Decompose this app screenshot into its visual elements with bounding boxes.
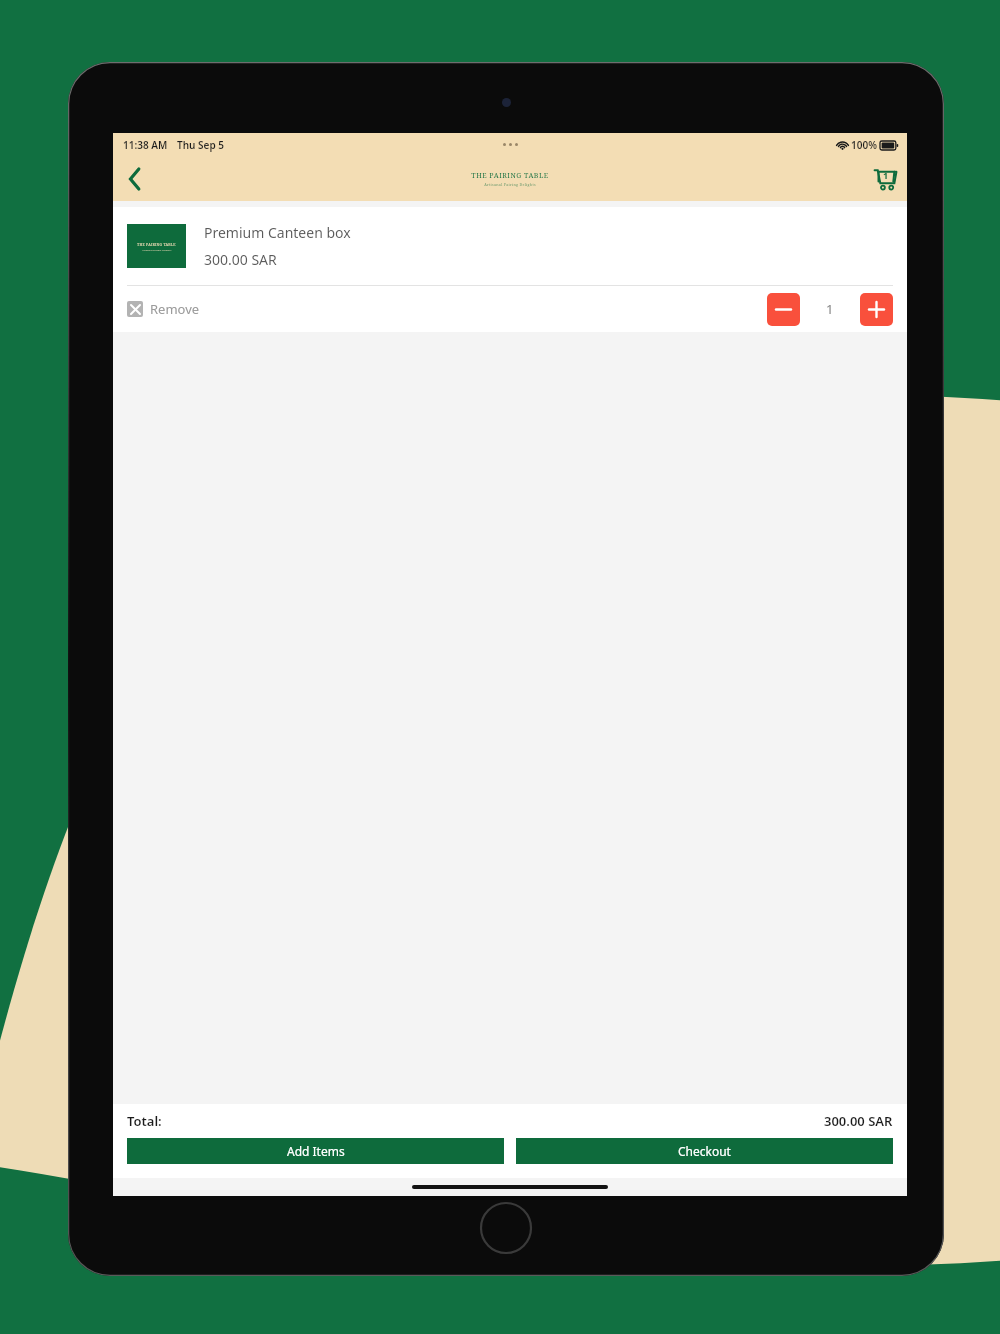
staticText: Artisanal Pairing Delights: [142, 248, 172, 251]
staticText: 300.00 SAR: [824, 1112, 893, 1130]
staticText: 300.00 SAR: [204, 250, 277, 269]
staticText: THE PAIRING TABLE: [471, 171, 549, 181]
staticText: 1: [883, 169, 889, 181]
staticText: Premium Canteen box: [204, 223, 351, 242]
button[interactable]: Decrease quantity: [767, 293, 800, 326]
button[interactable]: Cart: [863, 157, 907, 201]
staticText: 1: [826, 300, 834, 318]
staticText: Total:: [127, 1112, 162, 1130]
button[interactable]: Remove: [127, 300, 200, 318]
staticText: Remove: [150, 300, 200, 318]
staticText: 100%: [851, 138, 877, 152]
button[interactable]: Back: [113, 157, 157, 201]
staticText: Thu Sep 5: [177, 138, 224, 152]
button[interactable]: THE PAIRING TABLE: [113, 207, 907, 285]
staticText: THE PAIRING TABLE: [137, 242, 176, 247]
staticText: Artisanal Pairing Delights: [484, 182, 536, 187]
staticText: 11:38 AM: [123, 138, 168, 152]
button[interactable]: Increase quantity: [860, 293, 893, 326]
staticText: Checkout: [678, 1143, 731, 1159]
button[interactable]: Checkout: [516, 1138, 893, 1164]
button[interactable]: Add Items: [127, 1138, 504, 1164]
staticText: Add Items: [287, 1143, 345, 1159]
